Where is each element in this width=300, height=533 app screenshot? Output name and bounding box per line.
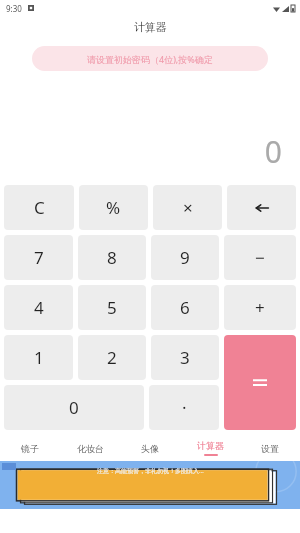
button[interactable]: 注意：高能预警，非礼勿视！多图慎入… xyxy=(0,461,300,509)
staticText: % xyxy=(106,196,121,219)
staticText: 计算器 xyxy=(197,440,224,451)
staticText: 4 xyxy=(34,296,44,319)
staticText: 头像 xyxy=(141,443,159,454)
button[interactable]: − xyxy=(224,235,296,280)
button[interactable]: 6 xyxy=(151,285,219,330)
button[interactable]: Equals xyxy=(224,335,296,430)
staticText: 9:30 xyxy=(6,3,22,14)
button[interactable]: 5 xyxy=(78,285,146,330)
staticText: 镜子 xyxy=(21,443,39,454)
button[interactable]: 1 xyxy=(4,335,73,380)
staticText: 0 xyxy=(69,396,79,419)
staticText: 5 xyxy=(107,296,117,319)
staticText: 化妆台 xyxy=(77,443,104,454)
staticText: 9 xyxy=(180,246,190,269)
staticText: + xyxy=(255,296,265,319)
staticText: 计算器 xyxy=(134,20,167,34)
staticText: 注意：高能预警，非礼勿视！多图慎入… xyxy=(97,467,204,475)
button[interactable]: 7 xyxy=(4,235,73,280)
button[interactable]: 化妆台 xyxy=(60,435,120,461)
staticText: 0 xyxy=(264,131,282,171)
staticText: 6 xyxy=(180,296,190,319)
button[interactable]: Backspace xyxy=(227,185,296,230)
staticText: 2 xyxy=(107,346,117,369)
staticText: 7 xyxy=(34,246,44,269)
staticText: − xyxy=(255,246,265,269)
button[interactable]: + xyxy=(224,285,296,330)
staticText: 设置 xyxy=(261,443,279,454)
button[interactable]: 9 xyxy=(151,235,219,280)
button[interactable]: 设置 xyxy=(240,435,300,461)
staticText: · xyxy=(182,396,187,419)
staticText: × xyxy=(183,196,193,219)
button[interactable]: 计算器 xyxy=(180,435,240,461)
button[interactable]: 0 xyxy=(4,385,144,430)
button[interactable]: % xyxy=(79,185,148,230)
staticText: 请设置初始密码（4位),按%确定 xyxy=(87,53,213,65)
button[interactable]: 3 xyxy=(151,335,219,380)
staticText: 8 xyxy=(107,246,117,269)
button[interactable]: 头像 xyxy=(120,435,180,461)
button[interactable]: 2 xyxy=(78,335,146,380)
staticText: 1 xyxy=(34,346,44,369)
button[interactable]: 镜子 xyxy=(0,435,60,461)
button[interactable]: × xyxy=(153,185,222,230)
staticText: 3 xyxy=(180,346,190,369)
button[interactable]: 4 xyxy=(4,285,73,330)
button[interactable]: 请设置初始密码（4位),按%确定 xyxy=(32,46,268,71)
button[interactable]: 8 xyxy=(78,235,146,280)
button[interactable]: C xyxy=(4,185,74,230)
staticText: C xyxy=(34,196,45,219)
button[interactable]: · xyxy=(149,385,219,430)
